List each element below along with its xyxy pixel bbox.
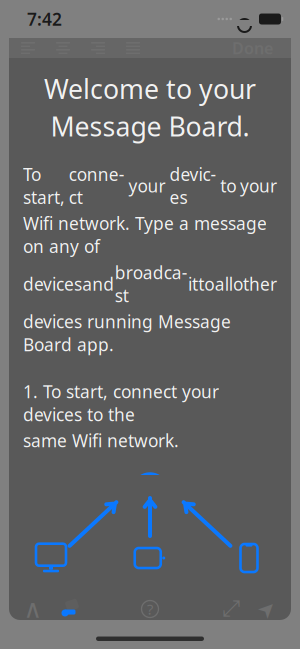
- staticText: Message Board.: [50, 108, 249, 144]
- button[interactable]: Camera: [51, 597, 87, 621]
- button[interactable]: Send: [249, 597, 285, 621]
- button[interactable]: Align center: [56, 39, 70, 57]
- staticText: connect: [69, 163, 125, 209]
- button[interactable]: Justify: [126, 39, 140, 57]
- staticText: ∧: [23, 595, 42, 623]
- staticText: to: [198, 272, 214, 295]
- staticText: 1. To start, connect your devices to the: [23, 380, 219, 426]
- staticText: to: [220, 174, 236, 197]
- staticText: it: [188, 272, 198, 295]
- button[interactable]: Collapse: [15, 597, 51, 621]
- staticText: ⤢: [222, 598, 240, 620]
- button[interactable]: Done: [224, 34, 281, 62]
- staticText: devices: [23, 272, 82, 295]
- staticText: other: [233, 272, 277, 295]
- button[interactable]: Align right: [91, 39, 105, 57]
- staticText: devices running Message Board app.: [23, 310, 231, 356]
- staticText: 7:42: [27, 7, 62, 30]
- staticText: devices: [169, 163, 216, 209]
- staticText: Wifi network. Type a message on any of: [23, 212, 267, 258]
- staticText: same Wifi network.: [23, 429, 179, 452]
- staticText: your: [240, 174, 277, 197]
- staticText: broadcast: [115, 261, 188, 307]
- staticText: ➤: [258, 597, 276, 621]
- button[interactable]: Help: [132, 597, 168, 621]
- staticText: ?: [147, 599, 153, 619]
- staticText: To start,: [23, 163, 65, 209]
- button[interactable]: Align left: [21, 39, 35, 57]
- button[interactable]: Expand: [213, 597, 249, 621]
- staticText: your: [129, 174, 166, 197]
- staticText: Welcome to your: [44, 71, 256, 106]
- staticText: and: [82, 272, 114, 295]
- staticText: all: [215, 272, 233, 295]
- staticText: Done: [232, 37, 273, 59]
